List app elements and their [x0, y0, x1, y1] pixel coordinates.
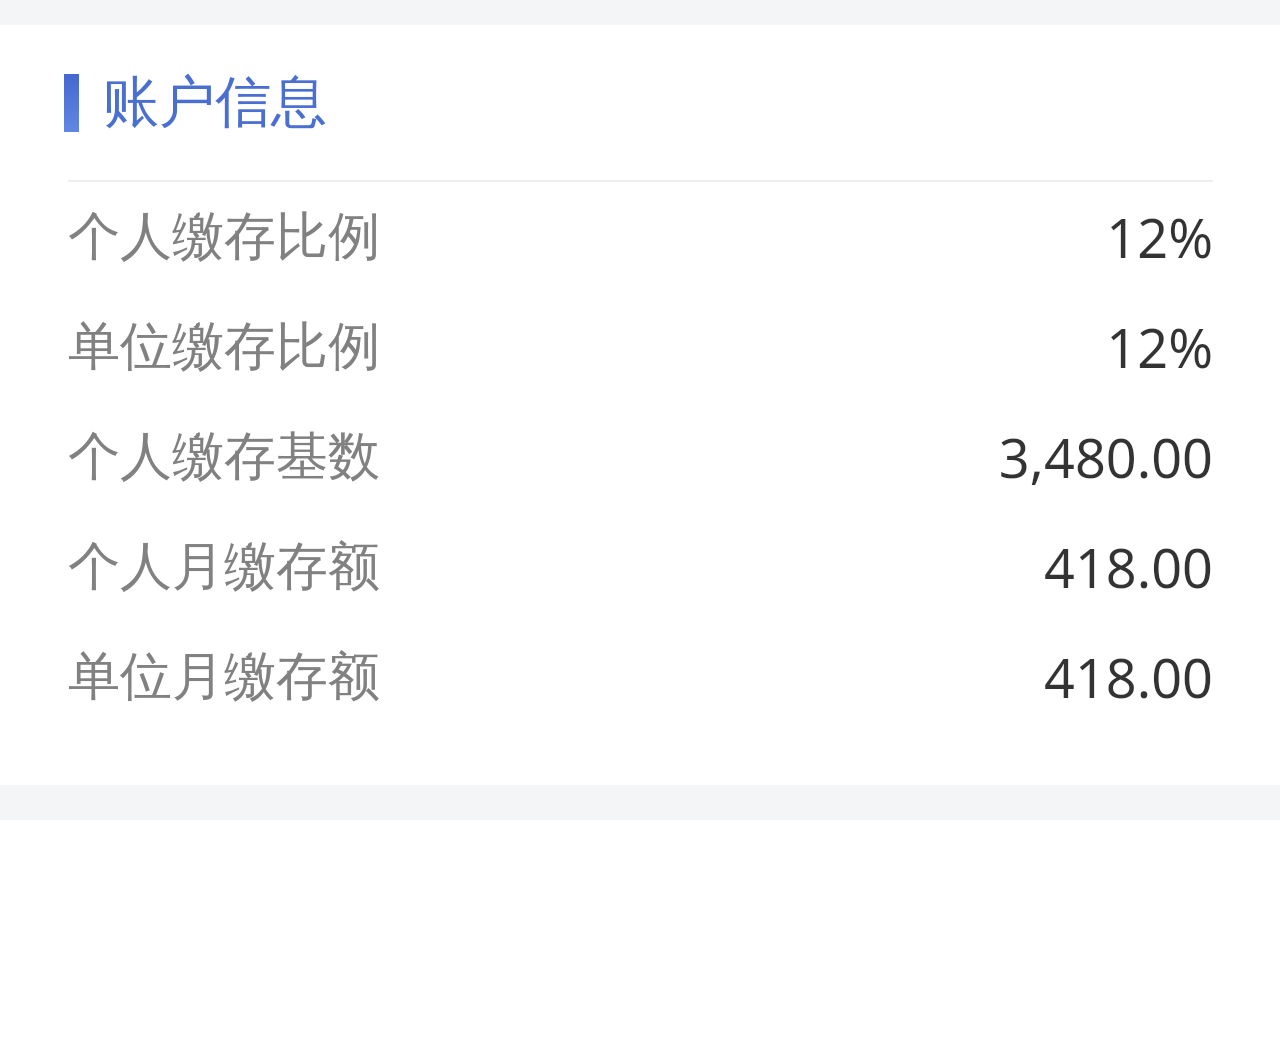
staticText: 12% — [1106, 310, 1213, 384]
staticText: 3,480.00 — [998, 420, 1213, 494]
staticText: 418.00 — [1044, 640, 1213, 714]
staticText: 12% — [1106, 200, 1213, 274]
staticText: 个人月缴存额 — [68, 534, 380, 600]
button[interactable]: 个人缴存基数 — [0, 402, 1280, 512]
button[interactable]: 单位缴存比例 — [0, 292, 1280, 402]
button[interactable]: 个人月缴存额 — [0, 512, 1280, 622]
staticText: 单位月缴存额 — [68, 644, 380, 710]
staticText: 个人缴存比例 — [68, 204, 380, 270]
staticText: 418.00 — [1044, 530, 1213, 604]
staticText: 个人缴存基数 — [68, 424, 380, 490]
button[interactable]: 单位月缴存额 — [0, 622, 1280, 732]
button[interactable]: 个人缴存比例 — [0, 182, 1280, 292]
button[interactable]: 账户信息 — [0, 25, 1280, 180]
staticText: 单位缴存比例 — [68, 314, 380, 380]
staticText: 账户信息 — [103, 67, 327, 138]
